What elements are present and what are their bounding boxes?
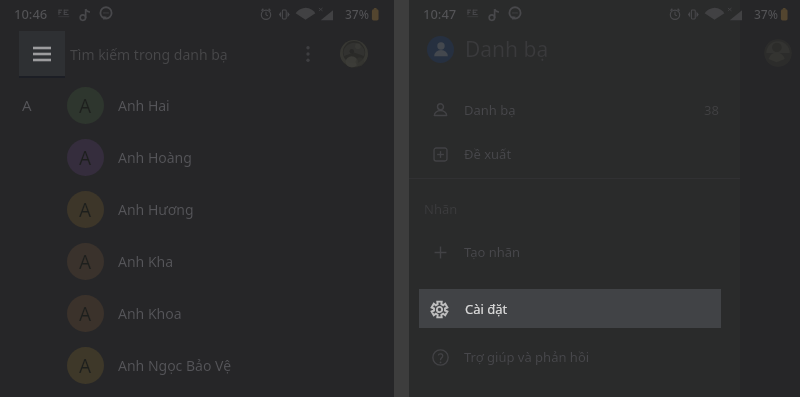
staticText: Anh Hai <box>118 96 170 115</box>
staticText: Nhãn <box>424 200 458 218</box>
staticText: Tạo nhãn <box>464 243 521 261</box>
button[interactable]: Danh bạ <box>409 28 740 70</box>
staticText: Trợ giúp và phản hồi <box>464 348 590 366</box>
staticText: Anh Hoàng <box>118 148 192 167</box>
button[interactable]: A <box>0 79 394 131</box>
staticText: Cài đặt <box>465 300 508 318</box>
button[interactable]: A <box>0 235 394 287</box>
button[interactable]: More options <box>296 42 320 66</box>
button[interactable]: Trợ giúp và phản hồi <box>409 335 740 379</box>
staticText: Danh bạ <box>464 101 516 119</box>
button[interactable]: Danh bạ <box>409 88 740 132</box>
staticText: Anh Ngọc Bảo Vệ <box>118 356 232 375</box>
staticText: Anh Hương <box>118 200 194 219</box>
staticText: Đề xuất <box>464 145 512 163</box>
button[interactable]: A <box>0 131 394 183</box>
staticText: 10:47 <box>423 5 457 23</box>
staticText: Anh Khoa <box>118 304 182 323</box>
staticText: 38 <box>704 101 719 119</box>
staticText: A <box>79 301 92 327</box>
staticText: A <box>79 197 92 223</box>
button[interactable]: A <box>0 287 394 339</box>
staticText: Tìm kiếm trong danh bạ <box>70 45 228 64</box>
staticText: A <box>22 95 32 115</box>
button[interactable]: A <box>0 183 394 235</box>
staticText: Anh Kha <box>118 252 174 271</box>
staticText: A <box>79 353 92 379</box>
button[interactable]: Cài đặt <box>419 289 721 328</box>
staticText: 37% <box>345 6 369 22</box>
staticText: A <box>79 93 92 119</box>
staticText: A <box>79 145 92 171</box>
button[interactable]: Account <box>340 40 368 68</box>
staticText: Danh bạ <box>465 35 549 64</box>
button[interactable]: A <box>0 339 394 391</box>
staticText: 10:46 <box>14 5 48 23</box>
staticText: 37% <box>754 6 778 22</box>
staticText: A <box>79 249 92 275</box>
button[interactable]: Open navigation menu <box>19 31 65 76</box>
